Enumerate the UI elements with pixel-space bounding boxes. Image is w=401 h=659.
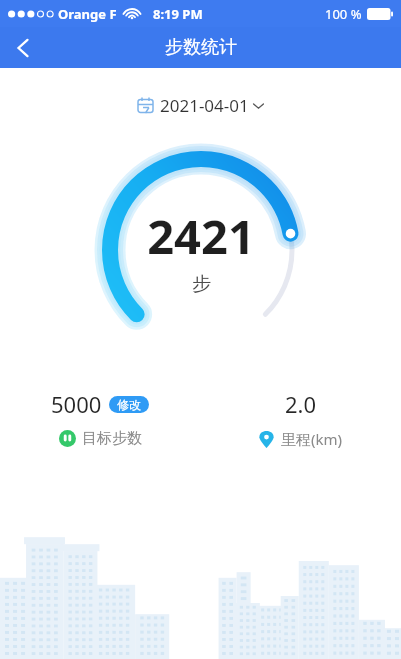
staticText: 2021-04-01 <box>160 94 249 117</box>
button[interactable]: 2021-04-01 <box>131 90 271 121</box>
staticText: 2.0 <box>285 389 317 419</box>
staticText: 里程(km) <box>281 429 343 449</box>
staticText: 步数统计 <box>165 36 237 59</box>
staticText: 修改 <box>117 397 141 412</box>
staticText: 8:19 PM <box>153 5 203 23</box>
button[interactable]: Back <box>0 27 46 68</box>
button[interactable]: 修改 <box>109 396 149 413</box>
staticText: 目标步数 <box>82 429 142 448</box>
staticText: 步 <box>192 272 211 296</box>
staticText: Orange F <box>58 5 117 23</box>
staticText: 100 % <box>325 5 362 23</box>
staticText: 2421 <box>147 204 255 268</box>
staticText: 5000 <box>51 389 102 419</box>
